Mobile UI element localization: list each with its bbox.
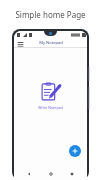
button[interactable]: Add new note <box>69 145 81 157</box>
button[interactable]: Back <box>22 168 36 179</box>
button[interactable]: Write Notepad <box>38 81 63 110</box>
staticText: My Notepad <box>39 40 63 45</box>
other: Write Notepad <box>40 81 61 102</box>
staticText: Simple home Page <box>15 9 86 20</box>
button[interactable]: Home <box>44 168 58 179</box>
button[interactable]: Open navigation menu <box>16 39 24 47</box>
staticText: Write Notepad <box>38 105 63 110</box>
button[interactable]: Recent apps <box>65 168 79 179</box>
